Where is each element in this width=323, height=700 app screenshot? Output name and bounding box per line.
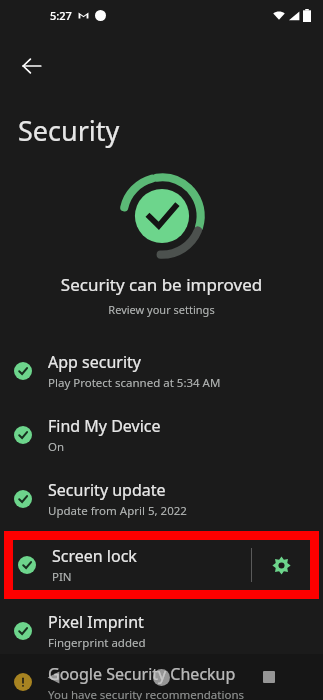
button[interactable]: Screen lock [13,540,310,590]
staticText: You have security recommendations [48,687,245,700]
button[interactable]: App security [0,339,323,403]
button[interactable]: Home [107,654,215,700]
button[interactable]: Pixel Imprint [0,599,323,663]
staticText: On [48,439,65,455]
staticText: Google Security Checkup [48,663,236,685]
staticText: Security can be improved [0,273,323,296]
button[interactable]: Find My Device [0,403,323,467]
staticText: Fingerprint added [48,635,146,651]
button[interactable]: Back [0,654,107,700]
staticText: Security [18,112,120,149]
staticText: App security [48,351,141,373]
button[interactable]: Screen lock settings [252,540,310,590]
button[interactable]: Google Security Checkup [0,663,323,700]
staticText: PIN [52,569,72,585]
staticText: Review your settings [0,302,323,317]
staticText: Screen lock [52,545,137,567]
button[interactable]: Security update [0,467,323,531]
staticText: Update from April 5, 2022 [48,503,187,519]
staticText: Pixel Imprint [48,611,144,633]
staticText: 5:27 [50,8,72,23]
button[interactable]: Back [10,44,54,88]
button[interactable]: Recent apps [215,654,323,700]
staticText: Security update [48,479,166,501]
staticText: Play Protect scanned at 5:34 AM [48,375,221,391]
staticText: Find My Device [48,415,161,437]
